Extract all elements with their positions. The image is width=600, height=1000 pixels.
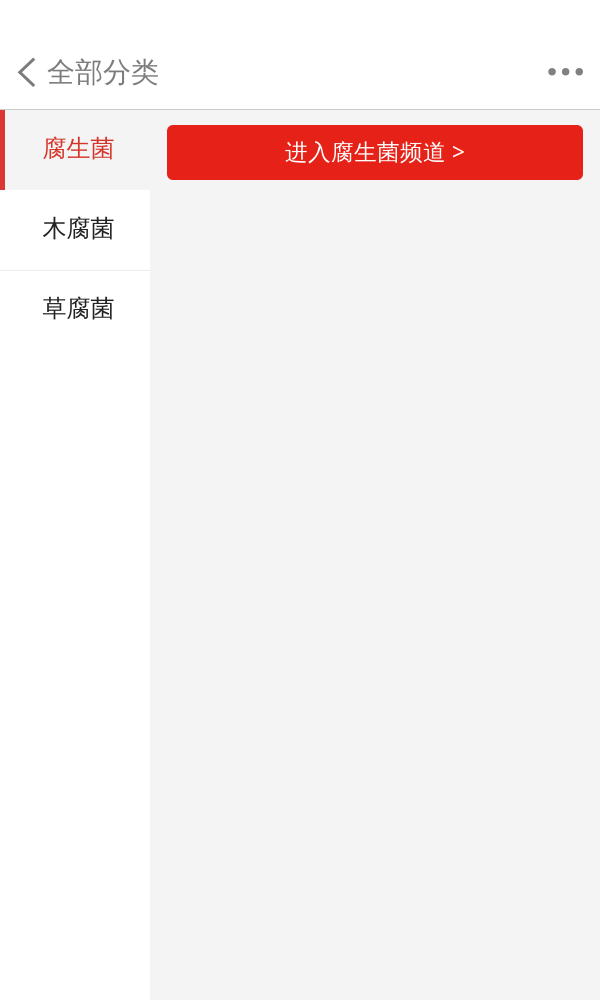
button[interactable]: 草腐菌 <box>0 270 150 350</box>
staticText: 腐生菌 <box>42 134 114 163</box>
button[interactable]: More options <box>528 36 600 109</box>
staticText: 木腐菌 <box>42 214 114 243</box>
staticText: 全部分类 <box>47 55 159 90</box>
staticText: 草腐菌 <box>42 294 114 323</box>
button[interactable]: 全部分类 <box>0 36 171 109</box>
button[interactable]: 进入腐生菌频道 > <box>167 125 583 180</box>
button[interactable]: 木腐菌 <box>0 190 150 270</box>
staticText: 进入腐生菌频道 > <box>285 136 465 166</box>
button[interactable]: 腐生菌 <box>0 110 150 190</box>
